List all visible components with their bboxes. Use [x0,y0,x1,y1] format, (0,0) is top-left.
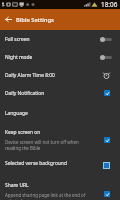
staticText: Share URL [5,182,29,189]
staticText: Append sharing page link at the end of s… [5,192,86,200]
button[interactable]: Night mode [0,48,120,66]
staticText: Daily Alarm Time 8:00 [5,72,103,79]
staticText: 18:06 [101,0,118,9]
button[interactable]: Daily Notification [0,84,120,102]
button[interactable]: Keep screen on [0,124,120,156]
staticText: Night mode [5,54,100,61]
button[interactable]: Daily Alarm Time 8:00 [0,66,120,84]
staticText: Keep screen on [5,129,41,136]
button[interactable]: Full screen [0,30,120,48]
staticText: Daily Notification [5,90,104,97]
staticText: Full screen [5,36,100,43]
staticText: Bible Settings [16,16,54,24]
button[interactable]: Share URL [0,171,120,200]
button[interactable]: Navigate up [0,9,16,30]
button[interactable]: Language [0,102,120,124]
other: Set alarm time [103,72,110,79]
staticText: Device screen will not turn off when rea… [5,139,79,151]
button[interactable]: Selected verse background [0,156,120,171]
staticText: Selected verse background [5,160,103,167]
staticText: Language [5,110,28,117]
